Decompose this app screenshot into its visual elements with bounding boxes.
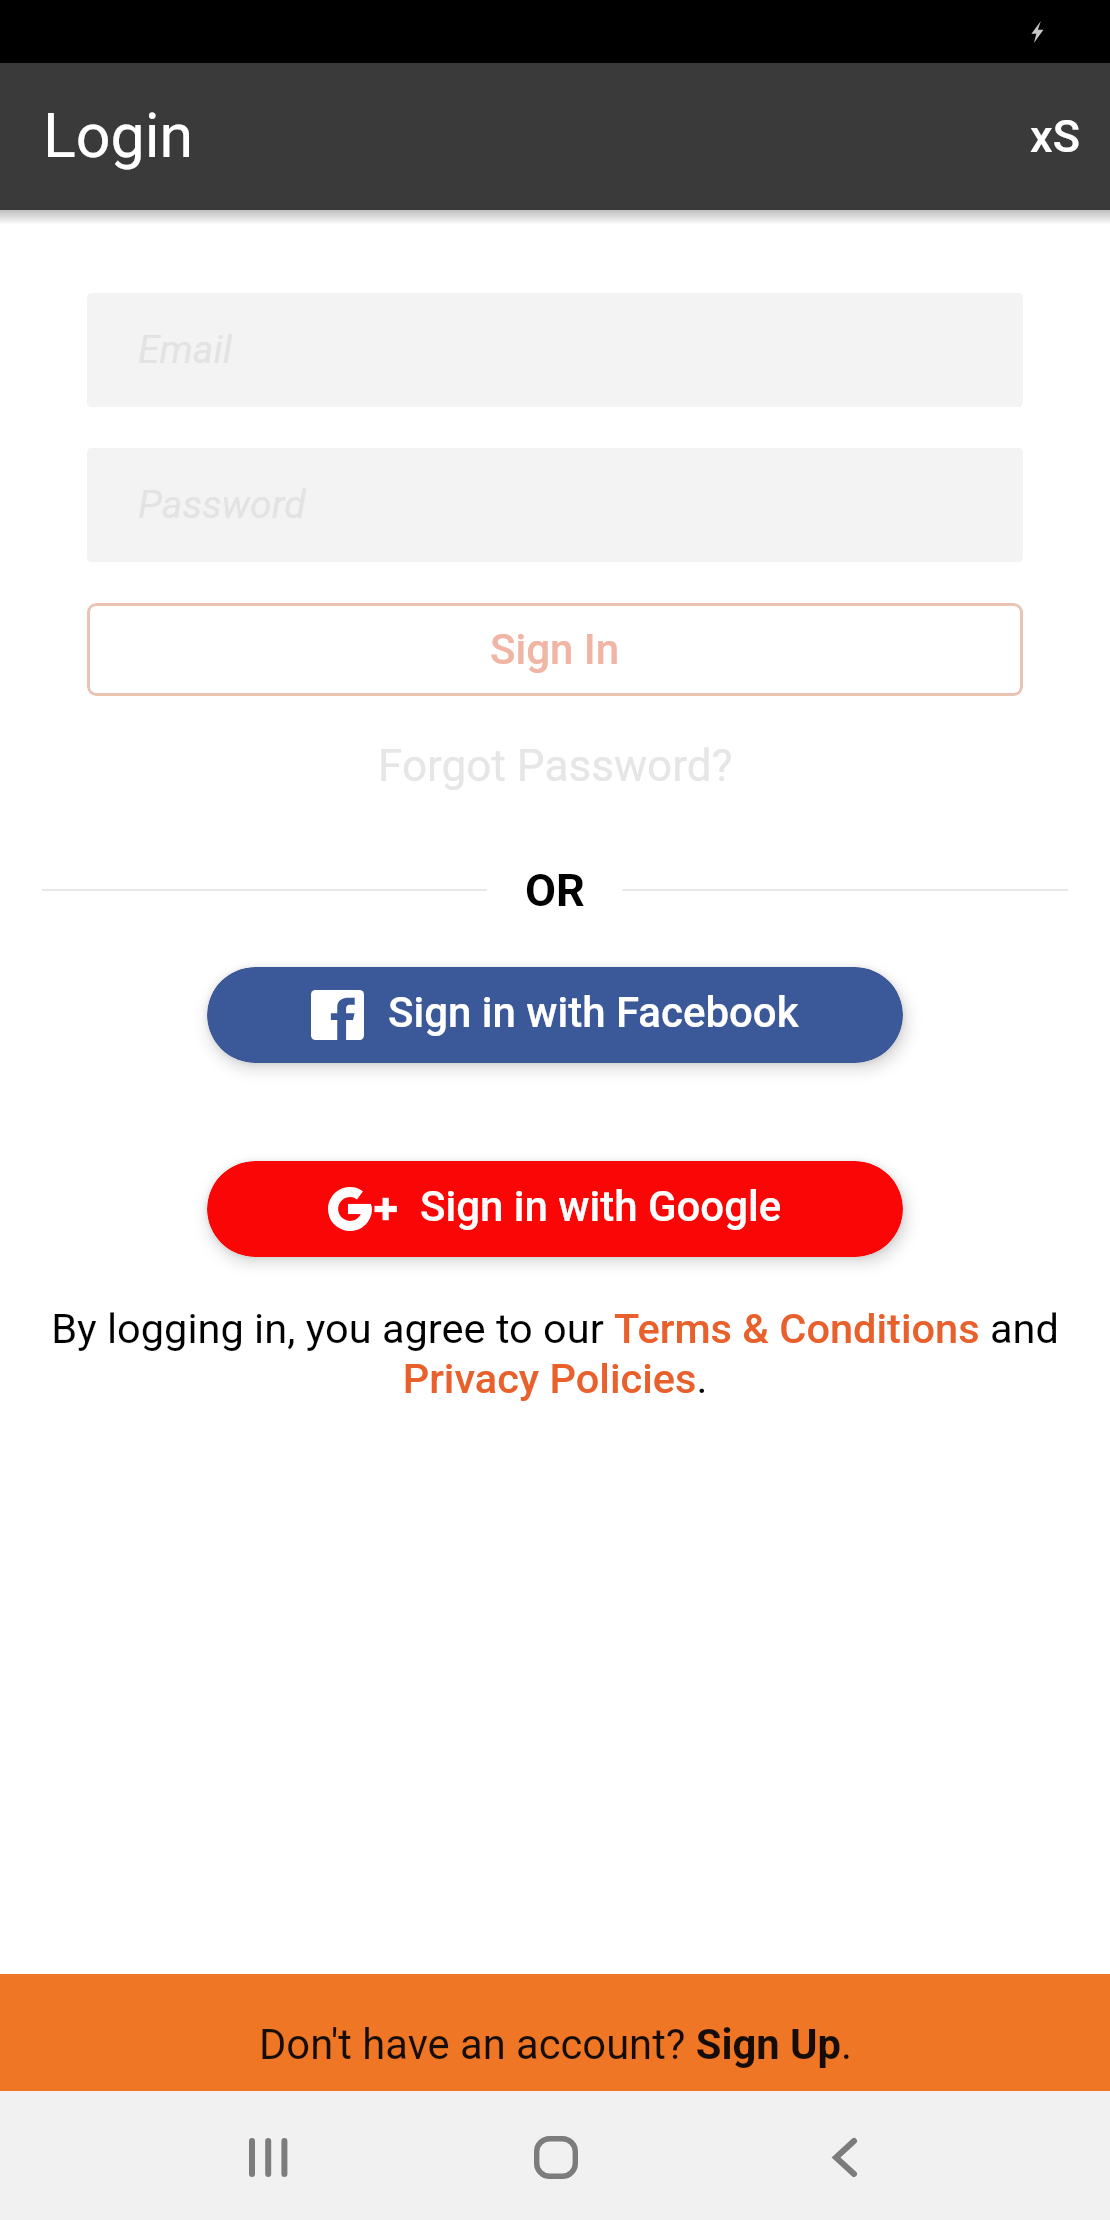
- staticText: xS: [1030, 110, 1080, 163]
- staticText: Sign In: [490, 625, 620, 674]
- button[interactable]: Don't have an account? Sign Up.: [0, 1974, 1110, 2091]
- button[interactable]: Sign in with Facebook: [207, 967, 903, 1063]
- staticText: Sign in with Facebook: [388, 988, 799, 1037]
- staticText: Login: [43, 101, 194, 172]
- staticText: Email: [138, 327, 232, 373]
- staticText: Sign in with Google: [420, 1182, 782, 1231]
- staticText: OR: [525, 864, 585, 917]
- button[interactable]: Forgot Password?: [0, 733, 1110, 799]
- button[interactable]: Recent apps: [0, 2094, 370, 2220]
- button[interactable]: Back: [740, 2094, 1110, 2220]
- button[interactable]: Sign In: [87, 603, 1023, 696]
- button[interactable]: Sign in with Google: [207, 1161, 903, 1257]
- button[interactable]: Home: [370, 2094, 740, 2220]
- staticText: Don't have an account? Sign Up.: [259, 2020, 852, 2069]
- staticText: Forgot Password?: [378, 740, 733, 792]
- staticText: Password: [138, 482, 306, 528]
- staticText: By logging in, you agree to our Terms & …: [42, 1304, 1068, 1404]
